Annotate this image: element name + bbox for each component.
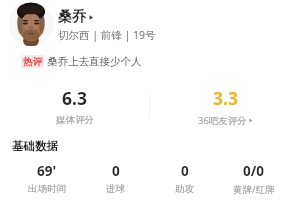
staticText: 助攻 — [175, 183, 194, 195]
staticText: 媒体评分 — [56, 114, 94, 126]
staticText: 切尔西 | 前锋 | 19号 — [58, 28, 156, 42]
staticText: 热评 — [23, 56, 42, 68]
button[interactable]: 0/0 — [219, 162, 288, 196]
button[interactable]: 热评 — [0, 52, 300, 70]
staticText: 桑乔 — [58, 8, 86, 26]
staticText: 0 — [181, 162, 189, 180]
button[interactable]: 6.3 — [0, 86, 149, 126]
button[interactable]: 0 — [81, 162, 150, 195]
staticText: 黄牌/红牌 — [233, 183, 275, 196]
staticText: 基础数据 — [12, 139, 58, 153]
button[interactable]: 桑乔 — [58, 8, 94, 26]
button[interactable]: 69' — [12, 162, 81, 195]
staticText: 3.3 — [213, 86, 238, 110]
staticText: 出场时间 — [28, 183, 66, 195]
staticText: 进球 — [106, 183, 125, 195]
button[interactable]: 3.3 — [150, 86, 300, 126]
staticText: 6.3 — [62, 86, 87, 110]
other: Player avatar — [9, 2, 53, 46]
button[interactable]: Player avatar — [0, 0, 300, 48]
button[interactable]: 0 — [150, 162, 219, 195]
staticText: 36吧友评分 — [198, 114, 247, 126]
staticText: 0/0 — [243, 162, 265, 180]
staticText: 69' — [37, 162, 57, 180]
staticText: 桑乔上去直接少个人 — [47, 55, 142, 68]
staticText: 0 — [112, 162, 120, 180]
